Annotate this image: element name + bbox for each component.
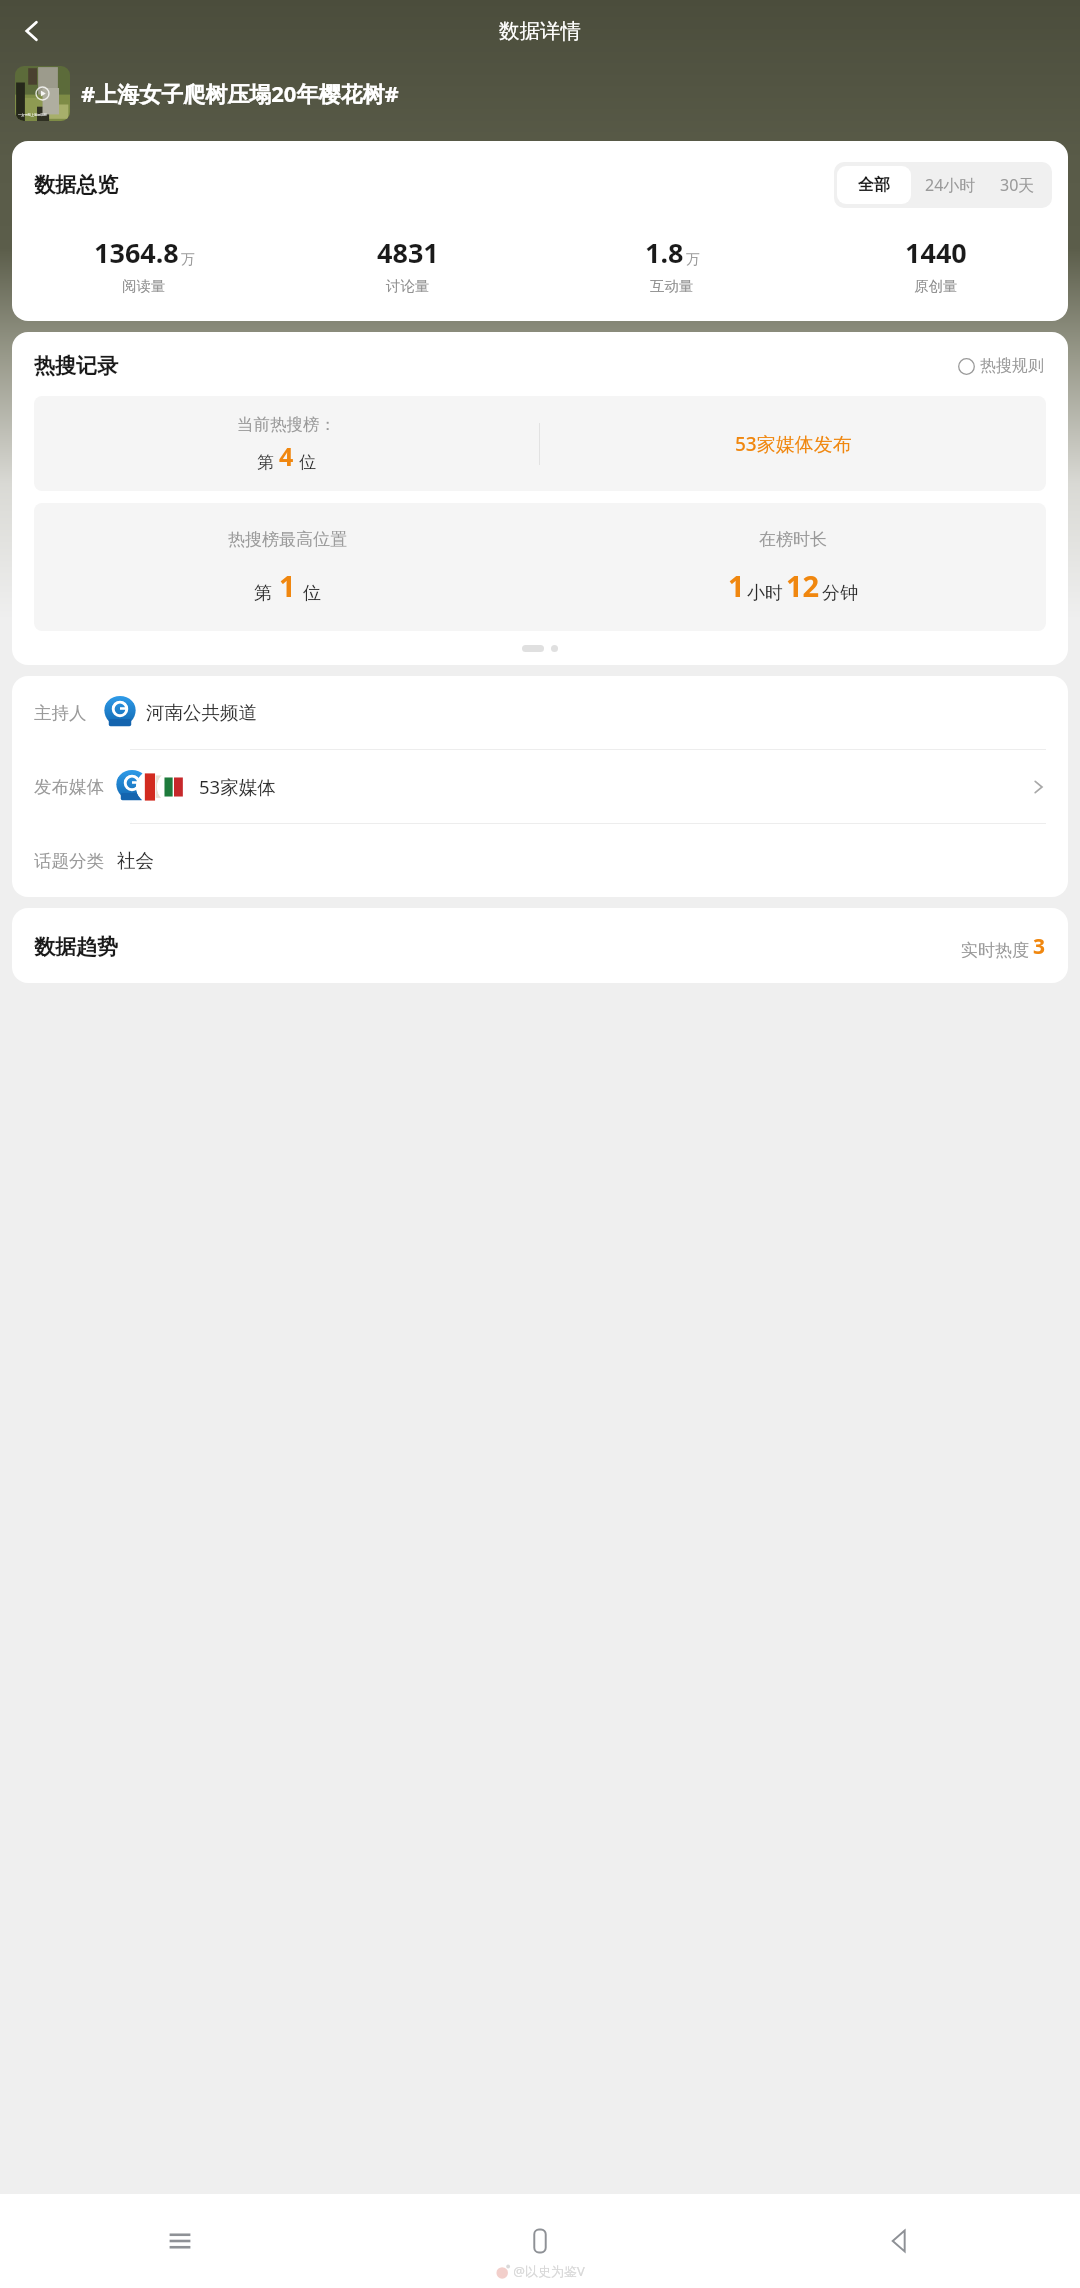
button[interactable]: Back xyxy=(8,7,56,55)
button[interactable]: 全部 xyxy=(837,166,911,204)
staticText: 1364.8 xyxy=(94,234,179,271)
staticText: 河南公共频道 xyxy=(146,701,257,724)
staticText: 发布媒体 xyxy=(34,776,104,798)
button[interactable]: 主持人 xyxy=(12,676,1068,749)
staticText: 互动量 xyxy=(650,277,694,295)
button[interactable]: Recent apps xyxy=(0,2194,360,2288)
staticText: 1440 xyxy=(905,234,967,271)
staticText: 30天 xyxy=(1000,174,1035,196)
staticText: 分钟 xyxy=(822,582,858,605)
staticText: 话题分类 xyxy=(34,850,104,872)
staticText: 万 xyxy=(181,251,195,269)
staticText: 数据总览 xyxy=(34,172,118,198)
staticText: @以史为鉴V xyxy=(513,2262,585,2280)
staticText: 53家媒体 xyxy=(199,774,276,799)
staticText: 4831 xyxy=(377,234,439,271)
staticText: 当前热搜榜： xyxy=(237,414,336,435)
staticText: 第 xyxy=(254,582,272,605)
button[interactable]: Topic video thumbnail xyxy=(15,66,70,121)
button[interactable]: Home xyxy=(360,2194,720,2288)
staticText: 热搜记录 xyxy=(34,353,118,379)
staticText: 讨论量 xyxy=(386,277,430,295)
button[interactable]: 实时热度 xyxy=(961,932,1046,961)
staticText: 1 xyxy=(279,566,296,605)
button[interactable]: 话题分类 xyxy=(12,824,1068,897)
staticText: 1.8 xyxy=(645,234,684,271)
button[interactable]: 30天 xyxy=(990,165,1049,205)
button[interactable]: 热搜榜最高位置 xyxy=(34,503,1046,631)
button[interactable]: 1440 xyxy=(804,234,1068,295)
staticText: 4 xyxy=(279,439,294,473)
staticText: 12 xyxy=(786,566,820,605)
staticText: #上海女子爬树压塌20年樱花树# xyxy=(81,78,399,108)
staticText: 小时 xyxy=(747,582,783,605)
staticText: 在榜时长 xyxy=(759,529,827,550)
button[interactable]: Back xyxy=(720,2194,1080,2288)
staticText: 位 xyxy=(299,452,316,473)
staticText: 社会 xyxy=(117,849,154,872)
staticText: 第 xyxy=(257,452,274,473)
button[interactable]: 4831 xyxy=(276,234,540,295)
staticText: 53家媒体发布 xyxy=(735,431,852,457)
staticText: 数据详情 xyxy=(499,18,581,44)
button[interactable]: 热搜规则 xyxy=(954,352,1048,380)
button[interactable]: 当前热搜榜： xyxy=(34,396,1046,491)
staticText: 原创量 xyxy=(914,277,958,295)
staticText: 1 xyxy=(728,566,745,605)
staticText: 主持人 xyxy=(34,702,87,724)
button[interactable]: 发布媒体 xyxy=(12,750,1068,823)
staticText: 热搜规则 xyxy=(980,356,1044,376)
button[interactable]: 1.8 xyxy=(540,234,804,295)
staticText: 实时热度 xyxy=(961,940,1029,961)
staticText: 一女子爬上海樱花树 xyxy=(18,113,47,117)
staticText: 热搜榜最高位置 xyxy=(228,529,347,550)
button[interactable]: 1364.8 xyxy=(12,234,276,295)
button[interactable]: 24小时 xyxy=(911,165,990,205)
staticText: 阅读量 xyxy=(122,277,166,295)
staticText: 24小时 xyxy=(925,174,976,196)
staticText: 3 xyxy=(1033,932,1046,961)
staticText: 数据趋势 xyxy=(34,934,118,960)
staticText: 位 xyxy=(303,582,321,605)
staticText: 万 xyxy=(686,251,700,269)
staticText: 全部 xyxy=(858,175,890,195)
